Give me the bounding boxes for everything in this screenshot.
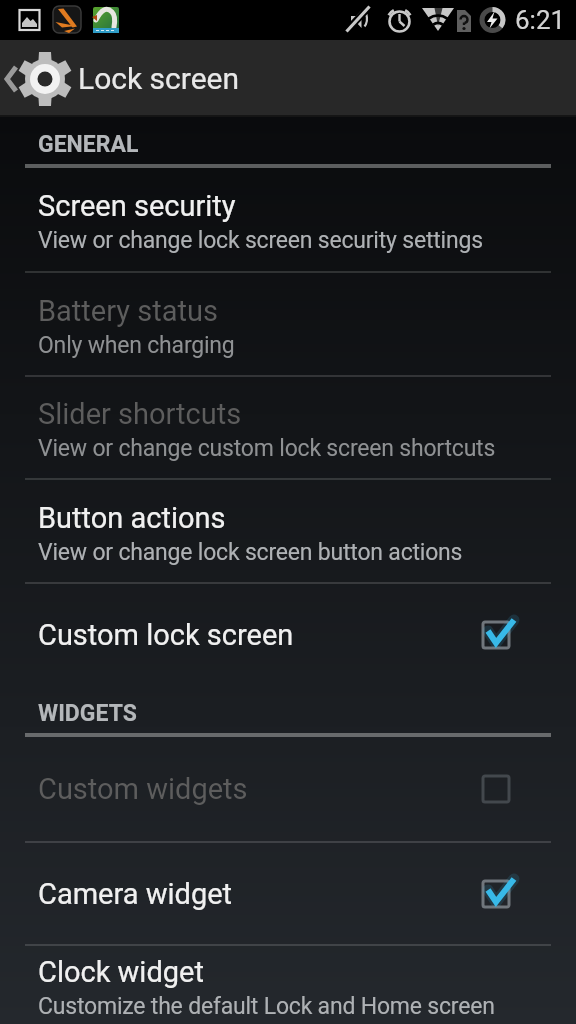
staticText: View or change lock screen security sett… xyxy=(38,227,483,254)
staticText: Clock widget xyxy=(38,955,204,989)
button[interactable]: Clock widget xyxy=(0,946,576,1024)
staticText: Slider shortcuts xyxy=(38,397,242,431)
staticText: Custom widgets xyxy=(38,772,248,806)
button[interactable] xyxy=(0,40,78,117)
button[interactable]: Button actions xyxy=(0,480,576,582)
staticText: View or change lock screen button action… xyxy=(38,539,463,566)
staticText: View or change custom lock screen shortc… xyxy=(38,435,496,462)
staticText: Custom lock screen xyxy=(38,618,294,652)
staticText: Only when charging xyxy=(38,332,235,359)
staticText: 6:21 xyxy=(515,5,566,35)
staticText: Camera widget xyxy=(38,877,233,911)
button[interactable]: Custom lock screen xyxy=(0,584,576,686)
button[interactable]: Battery status xyxy=(0,273,576,375)
button[interactable]: Custom widgets xyxy=(0,737,576,841)
button[interactable]: Slider shortcuts xyxy=(0,377,576,478)
staticText: Lock screen xyxy=(78,61,240,96)
staticText: WIDGETS xyxy=(38,700,137,727)
staticText: Button actions xyxy=(38,501,226,535)
staticText: Customize the default Lock and Home scre… xyxy=(38,993,495,1020)
staticText: GENERAL xyxy=(38,131,139,158)
button[interactable]: Screen security xyxy=(0,168,576,271)
staticText: Screen security xyxy=(38,189,236,223)
button[interactable]: Camera widget xyxy=(0,843,576,944)
staticText: Battery status xyxy=(38,294,218,328)
